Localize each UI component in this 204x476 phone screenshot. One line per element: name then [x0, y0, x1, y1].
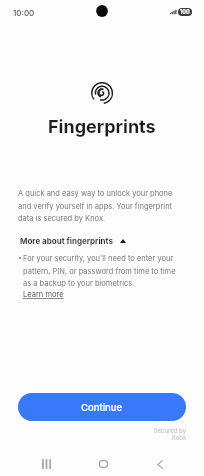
- staticText: 100: [180, 9, 190, 16]
- staticText: A quick and easy way to unlock your phon…: [18, 189, 180, 223]
- button[interactable]: Home: [85, 451, 121, 476]
- staticText: Continue: [81, 402, 123, 413]
- button[interactable]: Continue: [18, 393, 186, 421]
- staticText: For your security, you'll need to enter …: [23, 254, 185, 288]
- button[interactable]: Back: [142, 451, 178, 476]
- button[interactable]: More about fingerprints: [14, 234, 134, 248]
- staticText: Fingerprints: [48, 116, 156, 138]
- button[interactable]: Recent apps: [28, 451, 64, 476]
- staticText: More about fingerprints: [20, 236, 113, 246]
- staticText: Learn more: [23, 290, 64, 299]
- button[interactable]: Learn more: [19, 288, 68, 301]
- staticText: Secured by Knox: [130, 427, 186, 441]
- staticText: 10:00: [13, 8, 35, 18]
